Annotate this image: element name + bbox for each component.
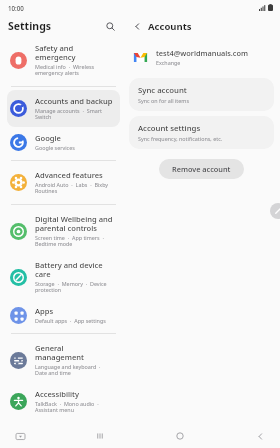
button[interactable]: Safety and emergency bbox=[7, 37, 120, 83]
staticText: Sync frequency, notifications, etc. bbox=[138, 135, 223, 142]
staticText: Google bbox=[35, 133, 61, 143]
staticText: Sync on for all items bbox=[138, 97, 189, 104]
staticText: Digital Wellbeing and parental controls bbox=[35, 214, 114, 233]
staticText: Accounts bbox=[148, 20, 192, 33]
button[interactable]: Apps bbox=[7, 300, 120, 330]
staticText: Account settings bbox=[138, 123, 201, 134]
button[interactable]: Home bbox=[170, 426, 190, 446]
staticText: 10:00 bbox=[8, 4, 24, 12]
staticText: Medical info · Wireless emergency alerts bbox=[35, 63, 114, 77]
button[interactable]: Digital Wellbeing and parental controls bbox=[7, 208, 120, 254]
staticText: Google services bbox=[35, 144, 75, 151]
staticText: Exchange bbox=[156, 59, 181, 66]
staticText: Battery and device care bbox=[35, 260, 114, 279]
staticText: TalkBack · Mono audio · Assistant menu bbox=[35, 400, 114, 414]
staticText: Android Auto · Labs · Bixby Routines bbox=[35, 181, 114, 195]
button[interactable]: Edit bbox=[270, 203, 280, 219]
staticText: Accessibility bbox=[35, 389, 79, 399]
button[interactable]: General management bbox=[7, 337, 120, 383]
staticText: Apps bbox=[35, 306, 54, 316]
button[interactable]: Accessibility bbox=[7, 383, 120, 420]
button[interactable]: Google bbox=[7, 127, 120, 157]
button[interactable]: Account settings bbox=[129, 116, 274, 149]
staticText: Default apps · App settings bbox=[35, 317, 106, 324]
button[interactable]: Battery and device care bbox=[7, 254, 120, 300]
button[interactable]: Advanced features bbox=[7, 164, 120, 201]
staticText: Accounts and backup bbox=[35, 96, 113, 106]
staticText: Language and keyboard · Date and time bbox=[35, 363, 114, 377]
button[interactable]: Search bbox=[101, 17, 119, 35]
staticText: Settings bbox=[8, 19, 52, 33]
button[interactable]: Recent apps bbox=[90, 426, 110, 446]
button[interactable]: Accounts and backup bbox=[7, 90, 120, 127]
button[interactable]: Hide keyboard bbox=[10, 426, 30, 446]
staticText: Manage accounts · Smart Switch bbox=[35, 107, 114, 121]
staticText: Advanced features bbox=[35, 170, 103, 180]
button[interactable]: Remove account bbox=[159, 159, 244, 179]
button[interactable]: test4@worldmanuals.com bbox=[129, 45, 274, 69]
button[interactable]: Back bbox=[250, 426, 270, 446]
button[interactable]: Sync account bbox=[129, 78, 274, 111]
staticText: Remove account bbox=[172, 164, 231, 174]
staticText: Sync account bbox=[138, 85, 187, 96]
staticText: General management bbox=[35, 343, 114, 362]
staticText: Safety and emergency bbox=[35, 43, 114, 62]
staticText: test4@worldmanuals.com bbox=[156, 48, 249, 58]
button[interactable]: Back bbox=[129, 18, 145, 34]
staticText: Storage · Memory · Device protection bbox=[35, 280, 114, 294]
staticText: Screen time · App timers · Bedtime mode bbox=[35, 234, 114, 248]
